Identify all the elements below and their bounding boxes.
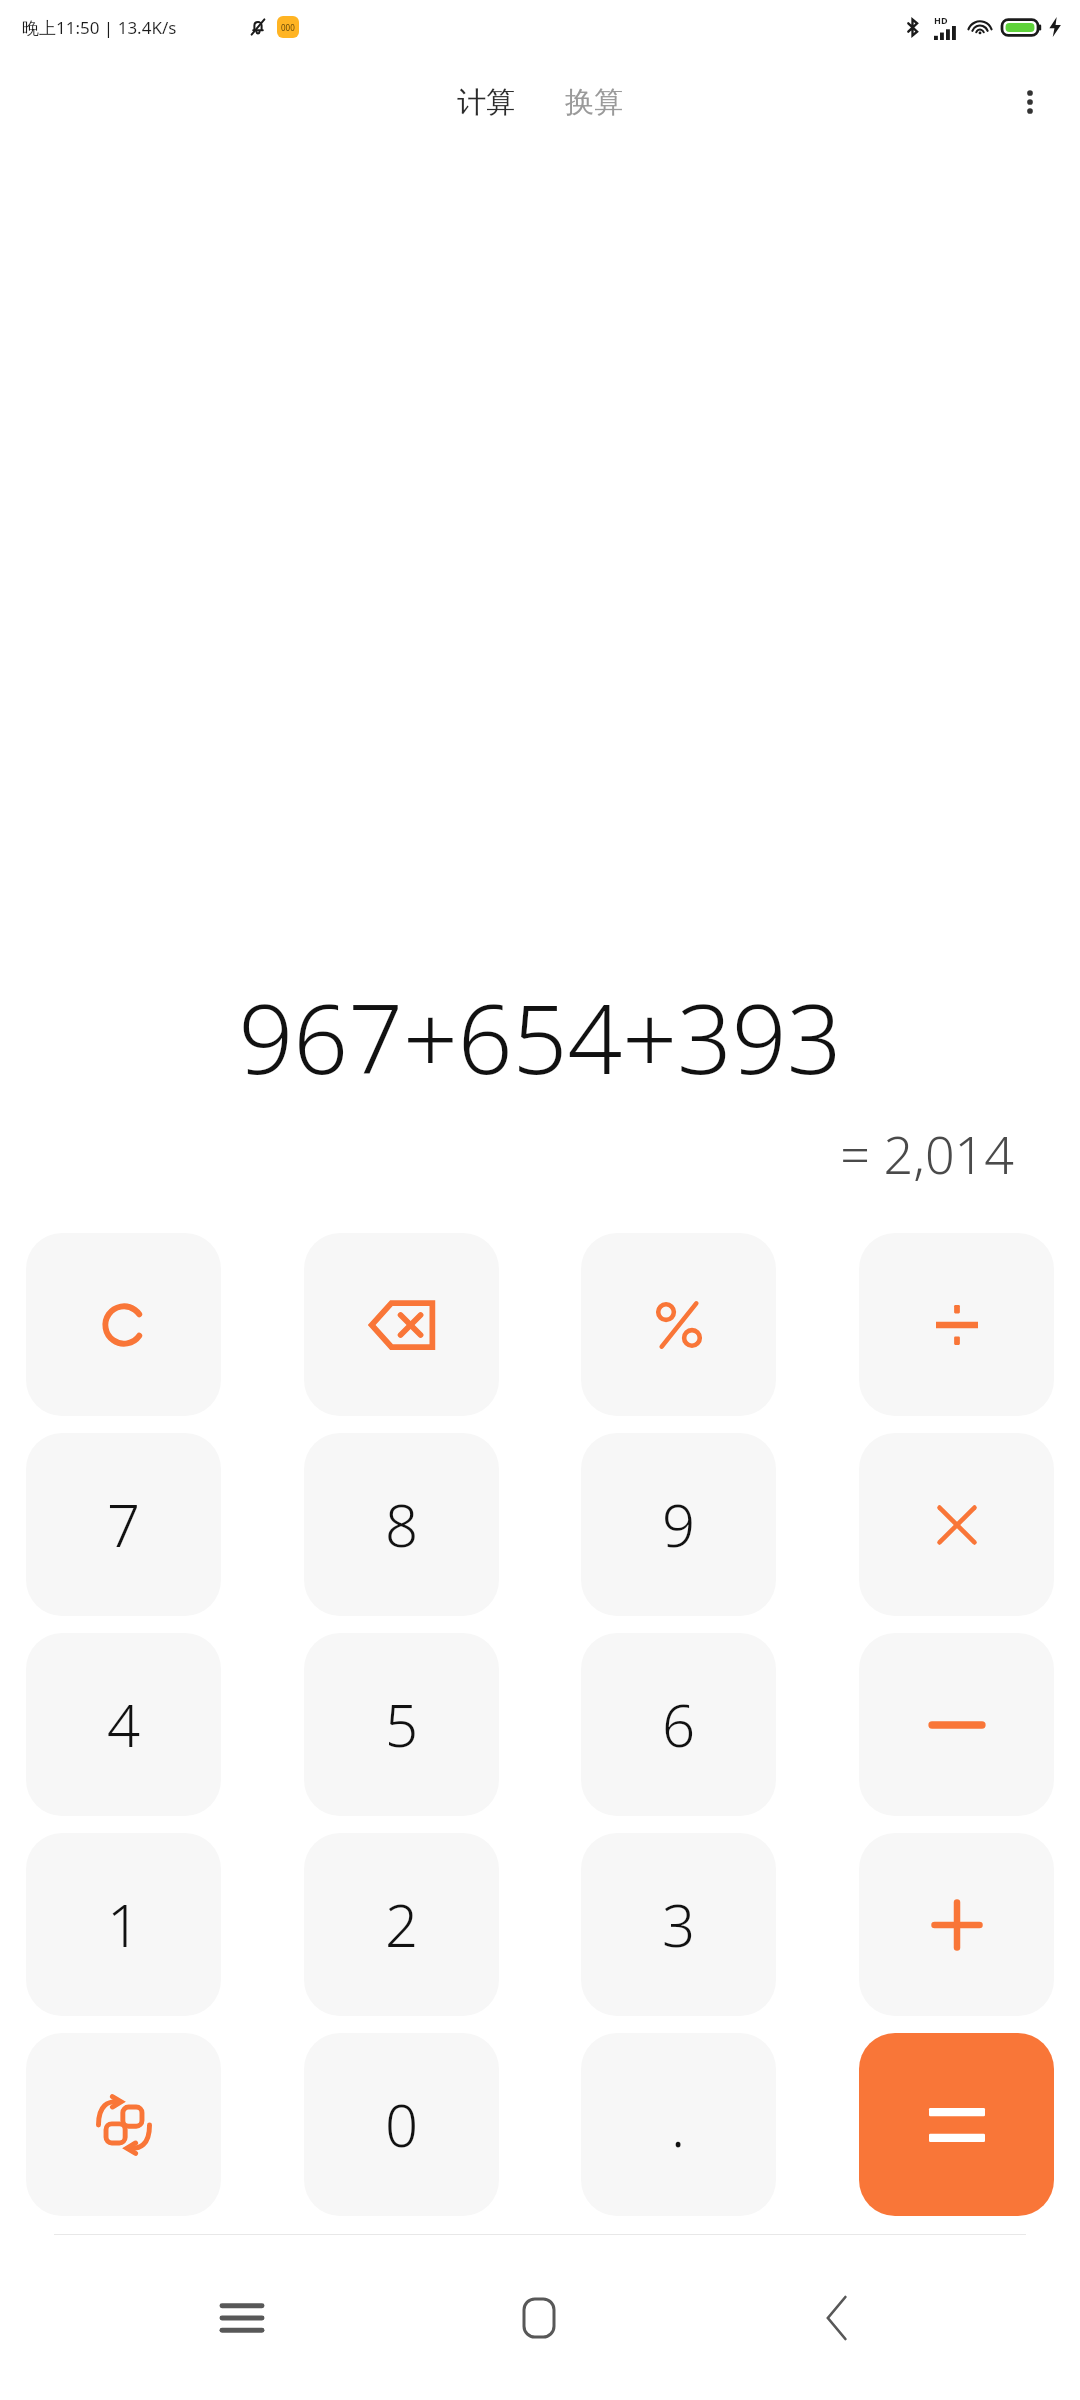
button[interactable]: Home: [484, 2263, 594, 2373]
staticText: 7: [107, 1485, 141, 1564]
button[interactable]: 3: [581, 1833, 776, 2016]
button[interactable]: Divide: [859, 1233, 1054, 1416]
button[interactable]: Plus: [859, 1833, 1054, 2016]
staticText: 5: [385, 1685, 419, 1764]
button[interactable]: 5: [304, 1633, 499, 1816]
button[interactable]: 6: [581, 1633, 776, 1816]
staticText: 9: [662, 1485, 696, 1564]
staticText: 计算: [457, 84, 515, 121]
button[interactable]: Equals: [859, 2033, 1054, 2216]
staticText: .: [671, 2085, 686, 2164]
staticText: 000: [281, 22, 295, 33]
button[interactable]: Clear: [26, 1233, 221, 1416]
button[interactable]: 换算: [555, 78, 633, 127]
button[interactable]: Recent apps: [187, 2263, 297, 2373]
staticText: 1: [107, 1885, 141, 1964]
button[interactable]: 2: [304, 1833, 499, 2016]
button[interactable]: 9: [581, 1433, 776, 1616]
button[interactable]: 计算: [447, 78, 525, 127]
button[interactable]: Backspace: [304, 1233, 499, 1416]
staticText: 967+654+393: [30, 971, 1050, 1102]
button[interactable]: 4: [26, 1633, 221, 1816]
staticText: 4: [107, 1685, 141, 1764]
staticText: 晚上11:50 | 13.4K/s: [22, 16, 177, 39]
staticText: 6: [662, 1685, 696, 1764]
button[interactable]: Back: [782, 2263, 892, 2373]
staticText: 0: [385, 2085, 419, 2164]
staticText: 换算: [565, 84, 623, 121]
button[interactable]: .: [581, 2033, 776, 2216]
staticText: HD: [934, 14, 948, 26]
staticText: 3: [662, 1885, 696, 1964]
button[interactable]: 1: [26, 1833, 221, 2016]
button[interactable]: Convert: [26, 2033, 221, 2216]
staticText: = 2,014: [30, 1118, 1014, 1189]
button[interactable]: Multiply: [859, 1433, 1054, 1616]
button[interactable]: Percent: [581, 1233, 776, 1416]
button[interactable]: 0: [304, 2033, 499, 2216]
button[interactable]: 8: [304, 1433, 499, 1616]
staticText: 8: [385, 1485, 419, 1564]
button[interactable]: 7: [26, 1433, 221, 1616]
staticText: 2: [385, 1885, 419, 1964]
button[interactable]: More options: [1002, 74, 1058, 130]
button[interactable]: Minus: [859, 1633, 1054, 1816]
